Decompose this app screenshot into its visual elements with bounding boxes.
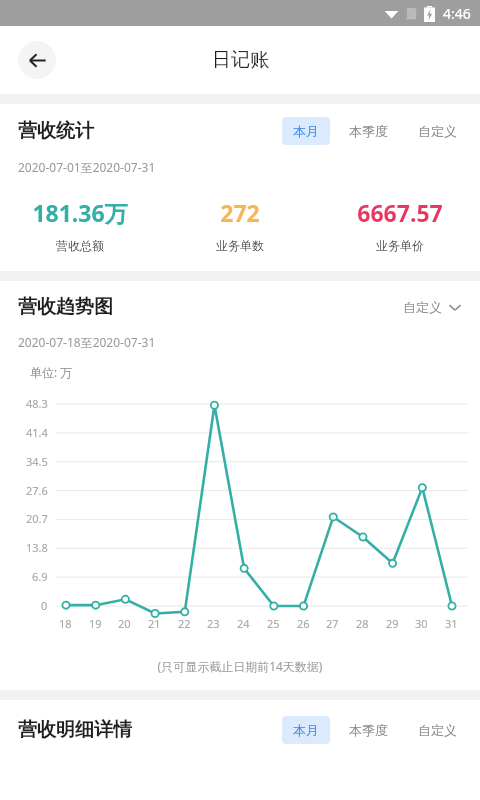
staticText: 单位: 万 <box>30 364 73 380</box>
staticText: 34.5 <box>26 454 48 469</box>
button[interactable]: 本季度 <box>338 716 399 744</box>
staticText: 20 <box>118 616 131 631</box>
staticText: 营收明细详情 <box>18 718 132 742</box>
staticText: 22 <box>178 616 191 631</box>
staticText: 营收统计 <box>18 119 94 143</box>
staticText: 6667.57 <box>357 197 443 228</box>
staticText: 13.8 <box>26 540 48 555</box>
staticText: 181.36万 <box>32 197 128 228</box>
staticText: 营收总额 <box>56 238 104 253</box>
button[interactable]: 本月 <box>282 117 330 145</box>
staticText: 26 <box>297 616 310 631</box>
staticText: 业务单数 <box>216 238 264 253</box>
staticText: 31 <box>445 616 458 631</box>
button[interactable]: 本季度 <box>338 117 399 145</box>
staticText: 30 <box>415 616 428 631</box>
staticText: 0 <box>41 598 48 613</box>
staticText: 28 <box>356 616 369 631</box>
button[interactable]: 自定义 <box>401 295 464 319</box>
button[interactable]: 本月 <box>282 716 330 744</box>
staticText: 自定义 <box>418 123 457 139</box>
staticText: 25 <box>267 616 280 631</box>
staticText: 4:46 <box>443 4 471 23</box>
staticText: 业务单价 <box>376 238 424 253</box>
staticText: 48.3 <box>26 396 48 411</box>
staticText: 24 <box>237 616 250 631</box>
staticText: 日记账 <box>212 48 269 72</box>
staticText: 2020-07-18至2020-07-31 <box>18 334 156 350</box>
staticText: 21 <box>148 616 161 631</box>
staticText: 272 <box>220 197 260 228</box>
staticText: 本月 <box>293 722 319 738</box>
staticText: 23 <box>207 616 220 631</box>
staticText: 27.6 <box>26 483 48 498</box>
staticText: 营收趋势图 <box>18 295 113 319</box>
staticText: 20.7 <box>26 511 48 526</box>
staticText: 本季度 <box>349 123 388 139</box>
staticText: 29 <box>386 616 399 631</box>
staticText: 19 <box>89 616 102 631</box>
button[interactable]: Back <box>18 41 56 79</box>
staticText: 6.9 <box>32 569 48 584</box>
staticText: 18 <box>59 616 72 631</box>
button[interactable]: 自定义 <box>407 117 468 145</box>
staticText: 自定义 <box>418 722 457 738</box>
staticText: 本月 <box>293 123 319 139</box>
staticText: 41.4 <box>26 425 48 440</box>
button[interactable]: 自定义 <box>407 716 468 744</box>
staticText: 2020-07-01至2020-07-31 <box>18 159 156 175</box>
staticText: 27 <box>326 616 339 631</box>
staticText: 自定义 <box>403 299 442 315</box>
staticText: 本季度 <box>349 722 388 738</box>
staticText: (只可显示截止日期前14天数据) <box>0 658 480 674</box>
